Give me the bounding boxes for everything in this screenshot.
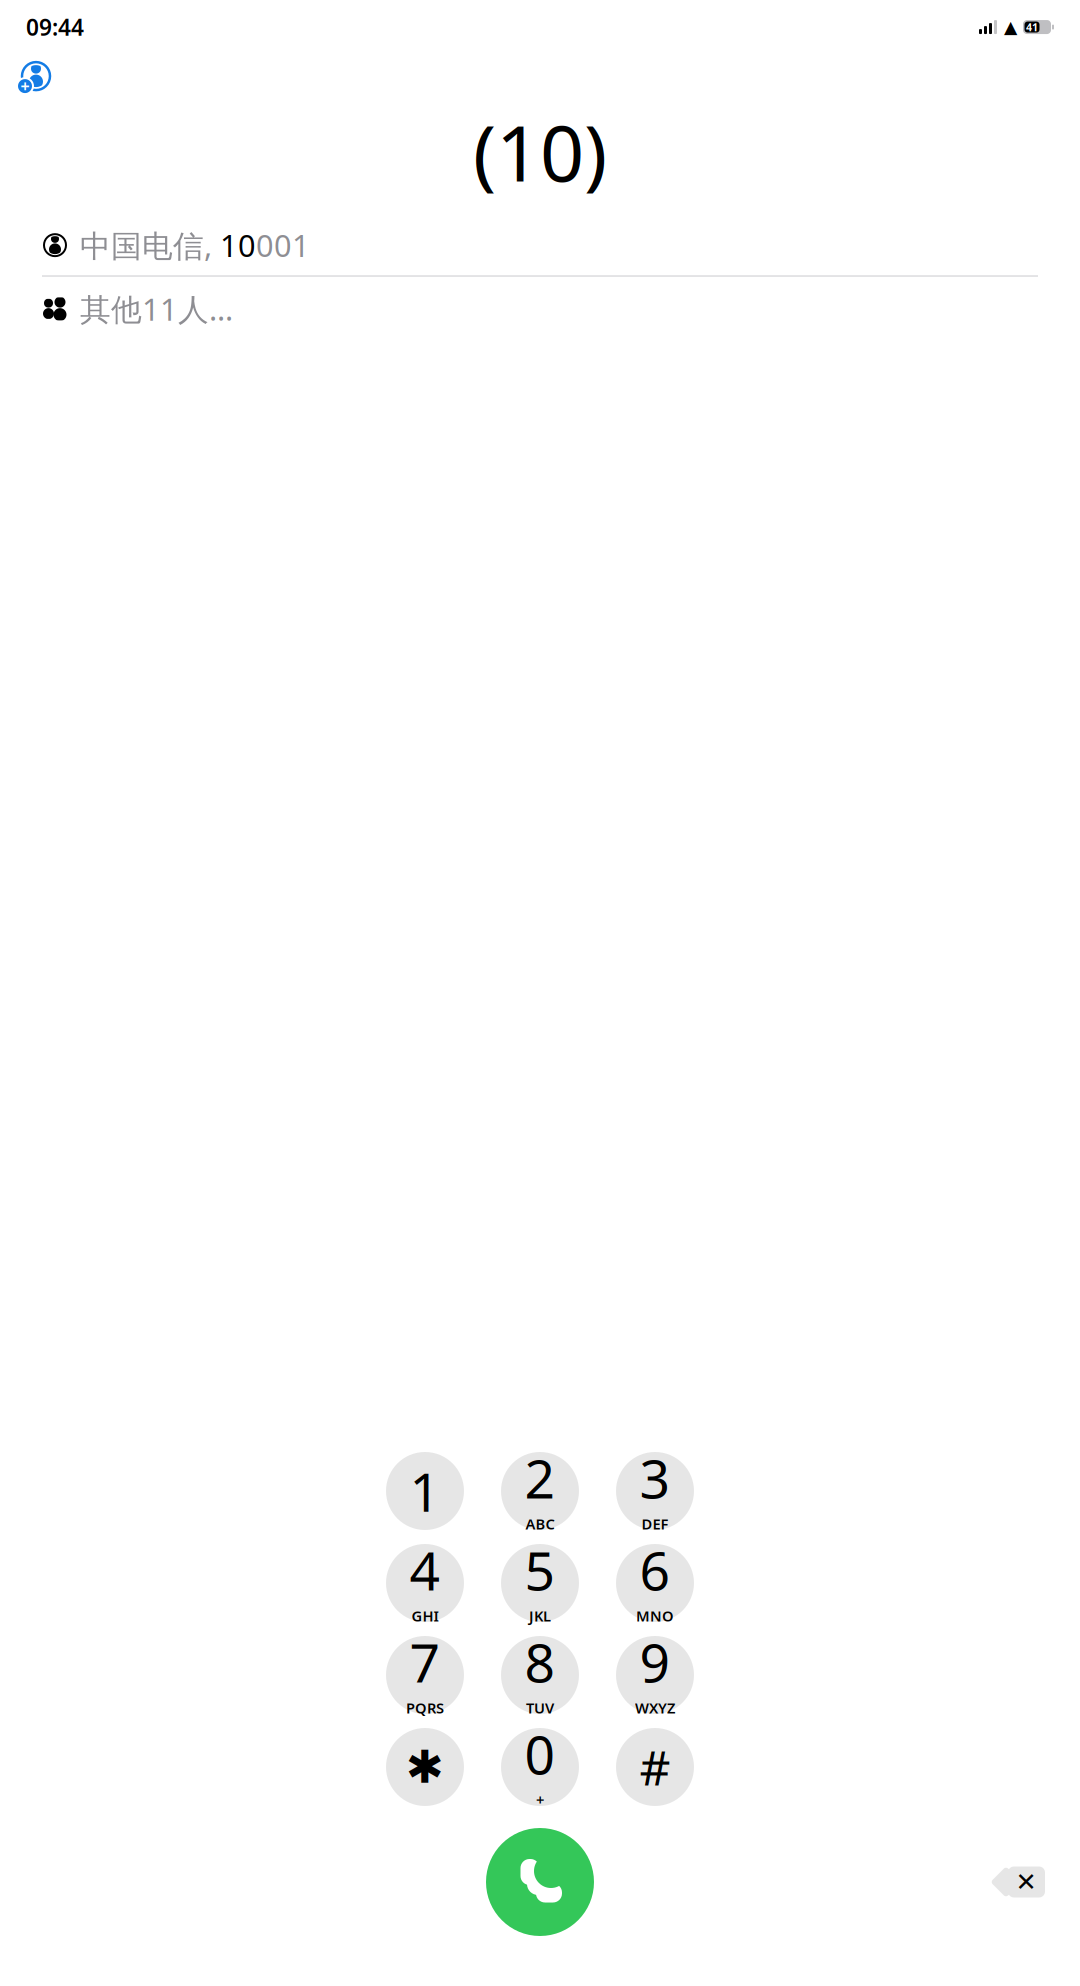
button[interactable]: 其他11人... (0, 276, 1080, 339)
staticText: 7 (409, 1626, 440, 1697)
button[interactable]: 3 (616, 1452, 694, 1530)
button[interactable]: 中国电信, (0, 203, 1080, 275)
button[interactable]: 7 (386, 1636, 464, 1714)
staticText: + (536, 1790, 544, 1810)
staticText: 0 (524, 1718, 555, 1789)
button[interactable]: Delete (990, 1862, 1050, 1902)
staticText: 5 (524, 1534, 555, 1605)
button[interactable]: # (616, 1728, 694, 1806)
button[interactable]: 9 (616, 1636, 694, 1714)
staticText: 9 (639, 1626, 670, 1697)
staticText: 3 (639, 1442, 670, 1513)
staticText: 6 (639, 1534, 670, 1605)
staticText: 中国电信, (80, 225, 220, 265)
staticText: 10 (220, 225, 256, 265)
button[interactable]: 4 (386, 1544, 464, 1622)
staticText: DEF (641, 1514, 668, 1534)
button[interactable]: 0 (501, 1728, 579, 1806)
staticText: GHI (411, 1606, 438, 1626)
staticText: + (20, 75, 29, 97)
staticText: 1 (409, 1456, 440, 1526)
staticText: MNO (636, 1606, 674, 1626)
staticText: 4 (409, 1534, 440, 1605)
staticText: WXYZ (635, 1698, 675, 1718)
staticText: ▲ (1004, 17, 1017, 37)
button[interactable]: 1 (386, 1452, 464, 1530)
button[interactable]: ✱ (386, 1728, 464, 1806)
staticText: ABC (525, 1514, 554, 1534)
staticText: # (639, 1735, 670, 1799)
staticText: 41 (1026, 20, 1038, 34)
staticText: (10) (473, 100, 607, 203)
staticText: 其他11人... (80, 288, 233, 329)
button[interactable]: Add Contact (8, 54, 56, 98)
button[interactable]: 5 (501, 1544, 579, 1622)
staticText: 09:44 (26, 12, 84, 42)
staticText: 2 (524, 1442, 555, 1513)
button[interactable]: 2 (501, 1452, 579, 1530)
staticText: TUV (526, 1698, 554, 1718)
staticText: ✱ (406, 1741, 444, 1793)
staticText: 001 (256, 225, 310, 265)
staticText: ✕ (1015, 1868, 1036, 1896)
staticText: PQRS (406, 1698, 444, 1718)
staticText: 8 (524, 1626, 555, 1697)
button[interactable]: 6 (616, 1544, 694, 1622)
button[interactable]: 8 (501, 1636, 579, 1714)
staticText: JKL (529, 1606, 551, 1626)
button[interactable]: Call (486, 1828, 594, 1936)
